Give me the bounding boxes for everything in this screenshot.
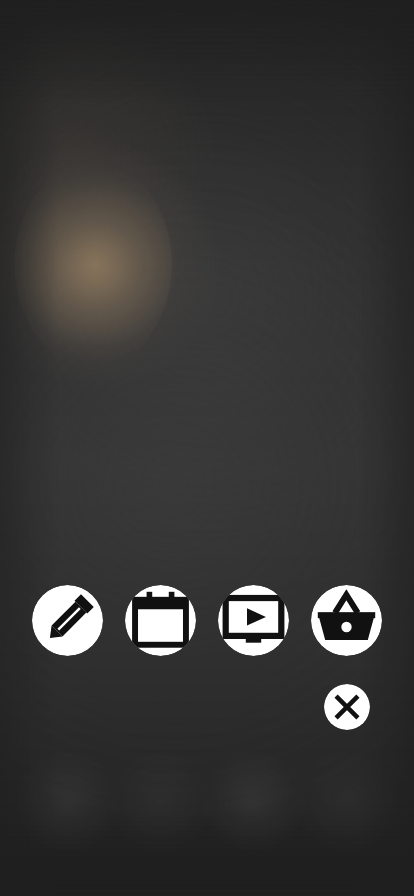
button[interactable]: Watch on demand: [218, 585, 289, 656]
button[interactable]: Shopping basket: [311, 585, 382, 656]
button[interactable]: Close menu: [324, 684, 370, 730]
button[interactable]: Add to calendar: [125, 585, 196, 656]
button[interactable]: Write a review: [32, 585, 103, 656]
